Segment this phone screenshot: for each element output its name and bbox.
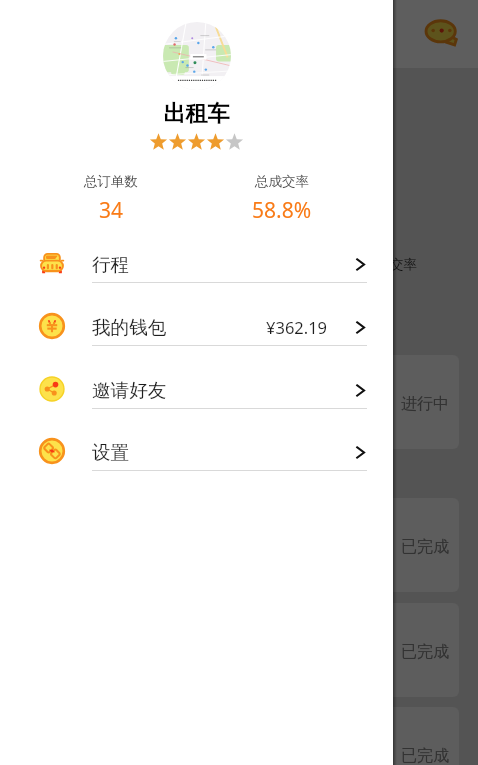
staticText: 进行中 — [401, 394, 449, 414]
staticText: 出租车 — [0, 100, 393, 128]
button[interactable]: 邀请好友 — [0, 358, 393, 421]
staticText: 总订单数 — [84, 173, 138, 190]
button[interactable]: 进行中 — [340, 355, 459, 449]
staticText: 58.8% — [252, 196, 312, 225]
staticText: ¥362.19 — [266, 316, 328, 338]
button[interactable]: 设置 — [0, 420, 393, 483]
button[interactable]: Messages — [422, 15, 460, 53]
staticText: 总成交率 — [255, 173, 309, 190]
button[interactable]: 已完成 — [340, 707, 459, 765]
staticText: 邀请好友 — [92, 379, 167, 402]
button[interactable]: Profile photo — [163, 22, 231, 90]
button[interactable]: 已完成 — [340, 603, 459, 697]
button[interactable]: 总成交率 — [212, 173, 352, 225]
staticText: 设置 — [92, 441, 130, 464]
staticText: 行程 — [92, 253, 130, 276]
button[interactable]: 我的钱包 — [0, 295, 393, 358]
staticText: 34 — [99, 196, 124, 225]
staticText: 已完成 — [401, 642, 449, 662]
button[interactable]: 行程 — [0, 232, 393, 295]
staticText: 已完成 — [401, 537, 449, 557]
button[interactable]: 总订单数 — [41, 173, 181, 225]
staticText: 已完成 — [401, 746, 449, 765]
staticText: 总成交率 — [363, 256, 417, 273]
button[interactable]: 已完成 — [340, 498, 459, 592]
staticText: 我的钱包 — [92, 316, 167, 339]
